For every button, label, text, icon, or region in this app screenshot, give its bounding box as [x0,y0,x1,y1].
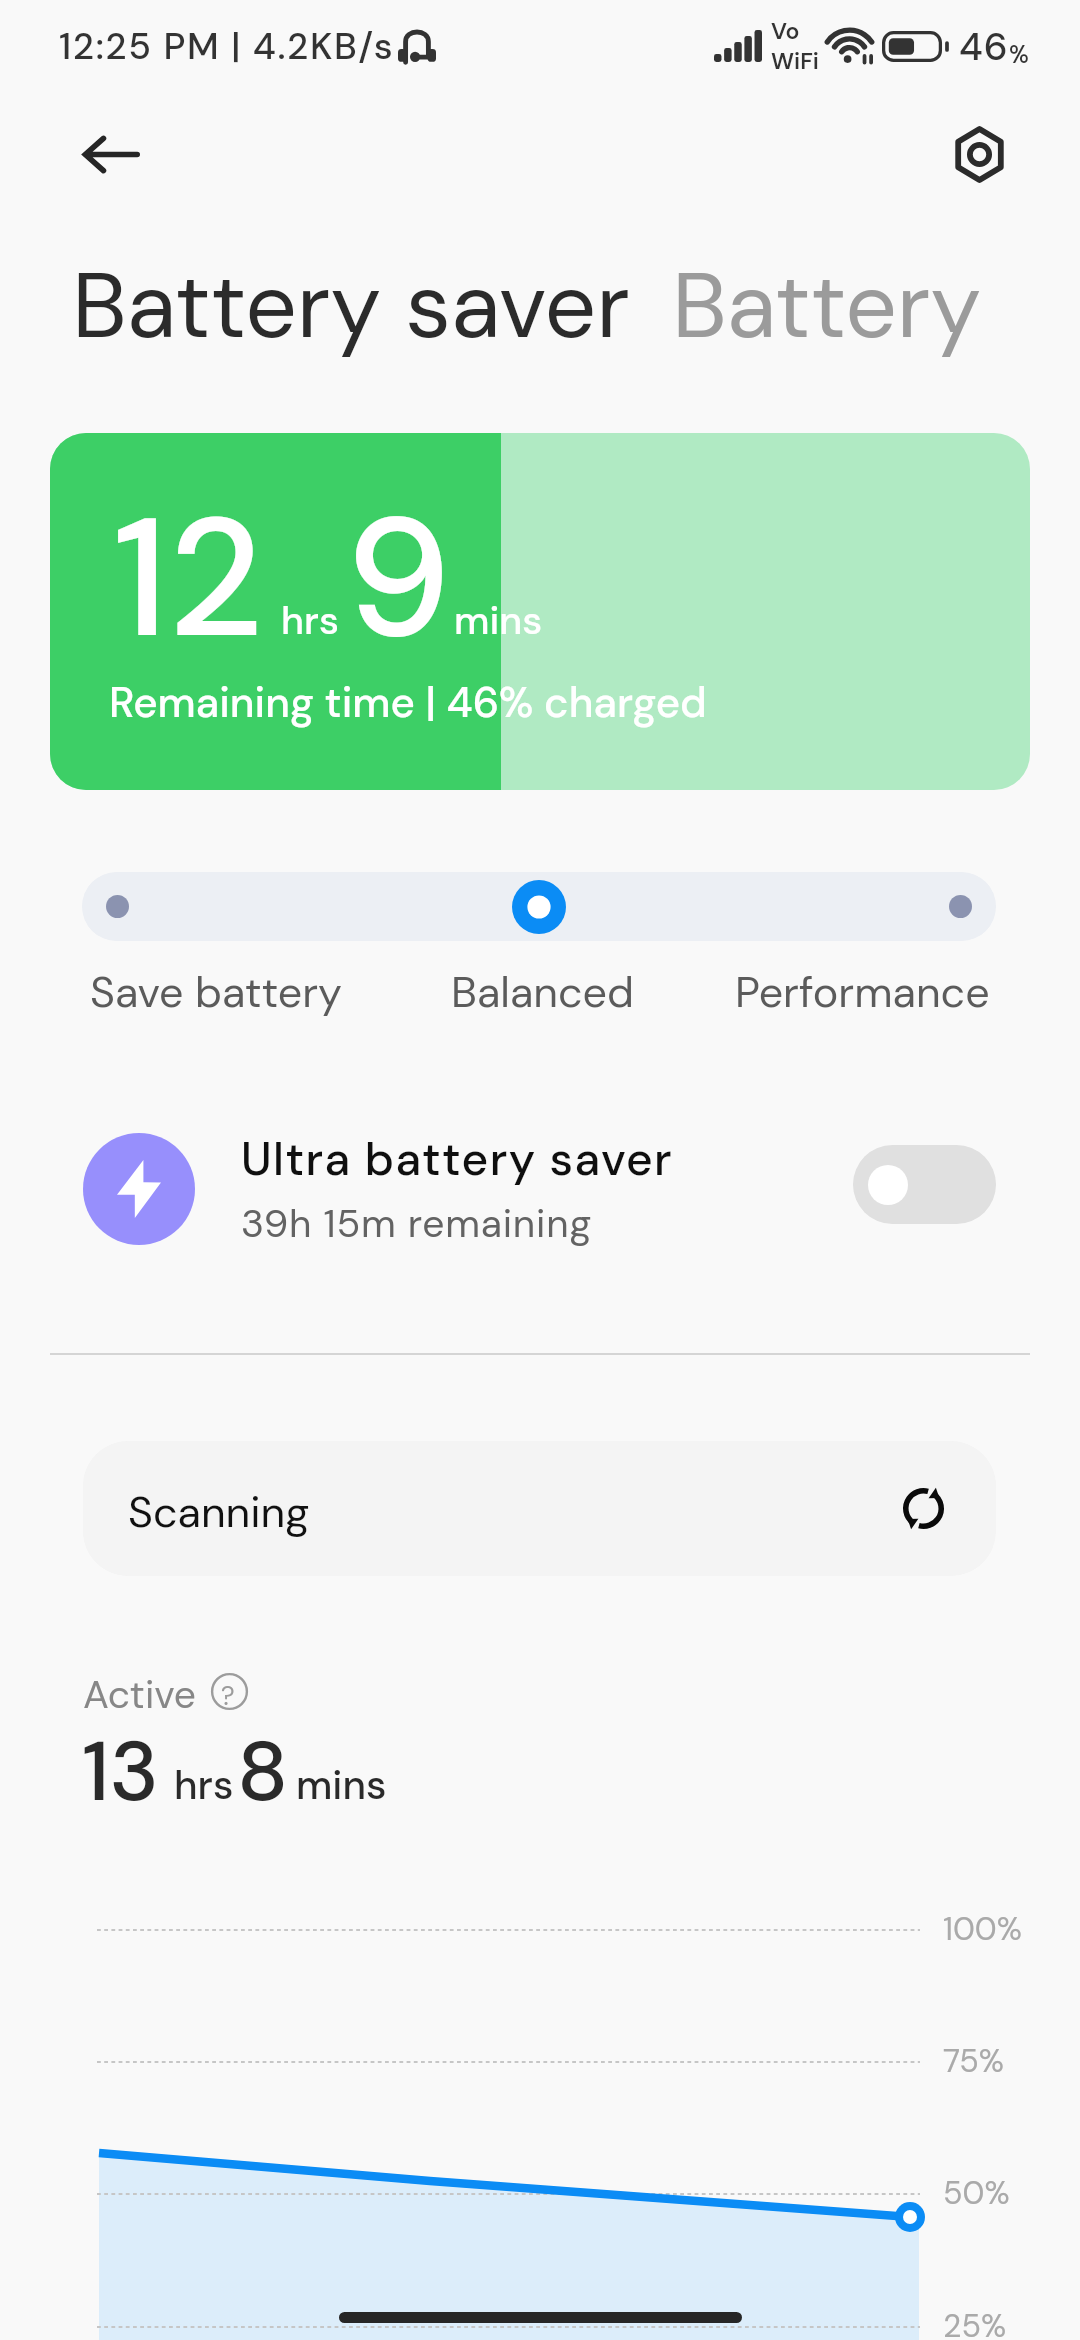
staticText: Battery [672,247,982,365]
staticText: mins [296,1759,387,1811]
staticText: 46 [959,22,1009,71]
staticText: Ultra battery saver [241,1129,674,1189]
button[interactable]: Settings [933,108,1025,200]
staticText: 12 [113,470,264,686]
staticText: Balanced [451,964,634,1020]
button[interactable]: Back [65,108,157,200]
button[interactable]: Ultra battery saver [0,1094,1080,1284]
staticText: Performance [735,964,990,1020]
staticText: Active [83,1669,196,1720]
staticText: Vo [771,16,800,46]
staticText: 13 [82,1718,159,1826]
button[interactable]: 12 [50,433,1030,790]
staticText: 75% [943,2040,1004,2082]
button[interactable]: Ultra battery saver toggle, off [853,1145,996,1224]
staticText: Save battery [90,964,343,1020]
staticText: Remaining time | 46% charged [109,675,707,730]
staticText: 9 [346,470,451,686]
staticText: WiFi [771,46,819,76]
staticText: 39h 15m remaining [241,1198,592,1249]
button[interactable]: Scanning [83,1441,996,1576]
staticText: hrs [174,1759,234,1811]
staticText: mins [454,595,543,646]
staticText: % [1009,39,1029,70]
staticText: 50% [943,2172,1010,2214]
staticText: hrs [281,595,339,646]
staticText: Scanning [128,1484,310,1540]
button[interactable]: Balanced [389,872,689,941]
button[interactable]: Performance [696,872,996,941]
staticText: Battery saver [72,247,630,365]
other: Refresh [903,1488,944,1529]
staticText: ? [221,1679,235,1713]
button[interactable]: Save battery [82,872,382,941]
staticText: 25% [943,2305,1007,2340]
staticText: 8 [237,1718,289,1826]
staticText: 100% [943,1908,1022,1950]
staticText: 12:25 PM | 4.2KB/s [59,22,395,70]
